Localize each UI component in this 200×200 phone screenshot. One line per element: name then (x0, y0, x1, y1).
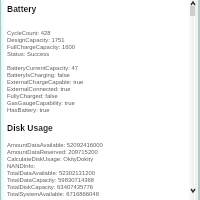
staticText: CalculateDiskUsage: OkityDokity (7, 156, 94, 163)
staticText: TotalDiskCapacity: 63407435776 (7, 184, 94, 191)
staticText: CycleCount: 428 (7, 30, 51, 37)
staticText: DesignCapacity: 1751 (7, 37, 65, 44)
staticText: ExternalChargeCapable: true (7, 79, 84, 86)
staticText: TotalSystemAvailable: 6716866048 (7, 191, 99, 198)
button[interactable]: Scroll up (189, 0, 197, 7)
staticText: AmountDataAvailable: 52092416000 (7, 142, 103, 149)
staticText: HasBattery: true (7, 107, 50, 114)
staticText: Battery (7, 4, 37, 13)
staticText: GasGaugeCapability: true (7, 100, 75, 107)
button[interactable]: Scroll down (189, 187, 197, 194)
staticText: Disk Usage (7, 123, 53, 132)
staticText: FullChargeCapacity: 1600 (7, 44, 76, 51)
staticText: BatteryIsCharging: false (7, 72, 70, 79)
staticText: FullyCharged: false (7, 93, 58, 100)
staticText: ExternalConnected: true (7, 86, 71, 93)
staticText: NANDInfo: (7, 163, 36, 170)
staticText: Status: Success (7, 51, 50, 58)
staticText: TotalDataAvailable: 52302131200 (7, 170, 95, 177)
staticText: TotalDataCapacity: 59830714368 (7, 177, 95, 184)
staticText: AmountDataReserved: 209715200 (7, 149, 98, 156)
staticText: BatteryCurrentCapacity: 47 (7, 65, 79, 72)
